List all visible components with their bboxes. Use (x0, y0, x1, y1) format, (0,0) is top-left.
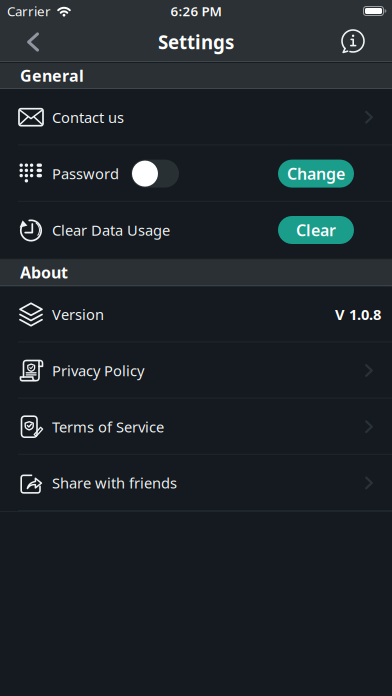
staticText: Change (287, 163, 345, 184)
staticText: Privacy Policy (52, 361, 144, 380)
staticText: About (20, 262, 68, 283)
button[interactable]: Change (278, 160, 354, 188)
button[interactable]: Info (340, 29, 392, 55)
staticText: General (20, 65, 84, 86)
staticText: Clear Data Usage (52, 220, 170, 240)
staticText: Terms of Service (52, 417, 164, 436)
staticText: Carrier (7, 2, 51, 20)
staticText: V 1.0.8 (335, 305, 381, 324)
button[interactable]: Share with friends (0, 455, 392, 511)
button[interactable]: Terms of Service (0, 399, 392, 455)
button[interactable]: Privacy Policy (0, 342, 392, 399)
staticText: Password (52, 164, 119, 183)
button[interactable]: Back (0, 32, 39, 51)
staticText: Contact us (52, 107, 124, 127)
staticText: Share with friends (52, 473, 177, 493)
staticText: Settings (158, 30, 234, 54)
staticText: Clear (296, 219, 336, 241)
staticText: 6:26 PM (170, 2, 221, 20)
staticText: Version (52, 305, 104, 324)
button[interactable]: Password toggle (119, 160, 179, 188)
button[interactable]: Clear (278, 216, 354, 244)
button[interactable]: Contact us (0, 89, 392, 145)
